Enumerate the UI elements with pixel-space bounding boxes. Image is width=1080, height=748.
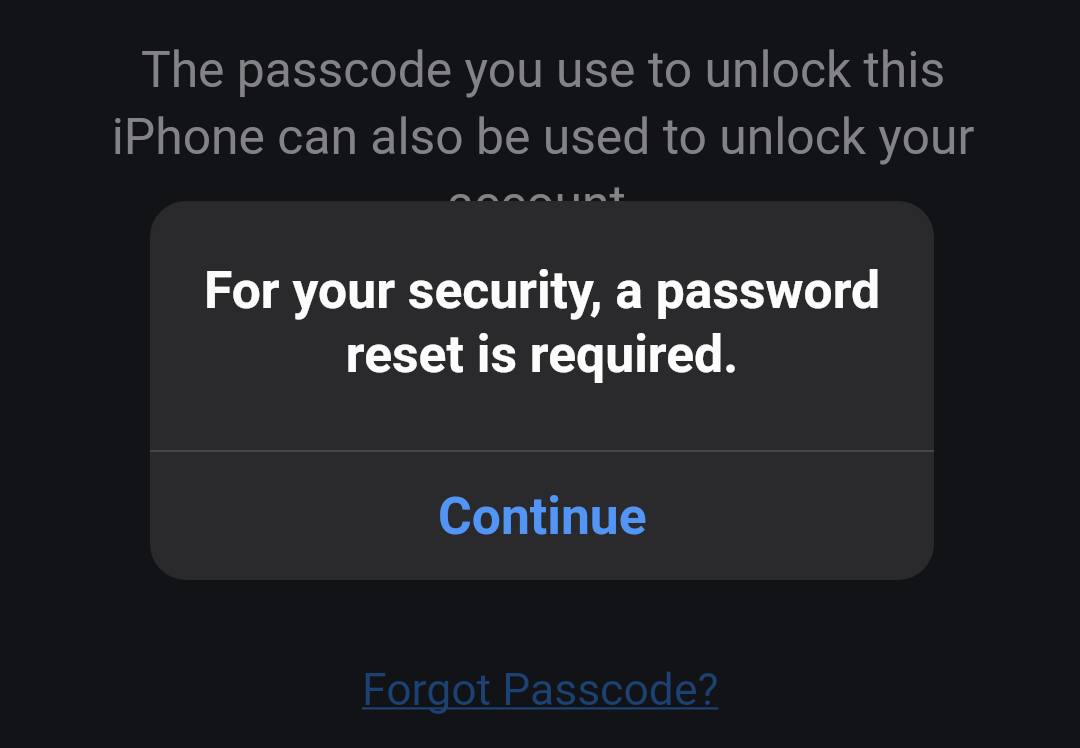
staticText: Continue [438,486,647,546]
staticText: Forgot Passcode? [362,664,719,716]
button[interactable]: Forgot Passcode? [352,658,729,722]
button[interactable]: Continue [150,452,934,580]
staticText: For your security, a password reset is r… [174,260,910,384]
staticText: The passcode you use to unlock this iPho… [91,41,995,233]
